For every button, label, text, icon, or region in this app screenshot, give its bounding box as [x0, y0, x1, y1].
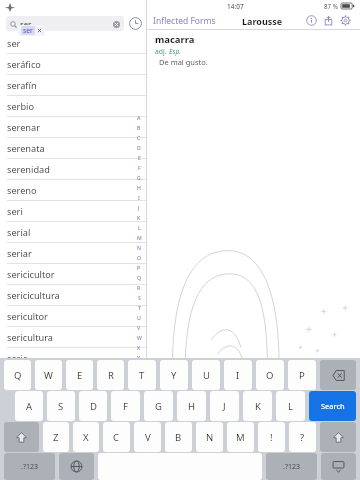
button[interactable]: !: [258, 422, 285, 452]
staticText: .?123: [21, 462, 38, 472]
button[interactable]: D: [135, 142, 143, 152]
button[interactable]: N: [196, 422, 223, 452]
button[interactable]: L: [135, 222, 143, 232]
staticText: D: [90, 400, 97, 413]
button[interactable]: Z: [43, 422, 69, 452]
button[interactable]: N: [135, 242, 143, 252]
button[interactable]: Hide keyboard: [321, 453, 356, 480]
button[interactable]: M: [227, 422, 254, 452]
button[interactable]: S: [47, 391, 75, 421]
button[interactable]: serenidad: [0, 159, 146, 180]
button[interactable]: V: [135, 322, 143, 332]
button[interactable]: Shift: [320, 422, 356, 452]
button[interactable]: ser: [18, 25, 45, 36]
button[interactable]: P: [288, 360, 316, 390]
button[interactable]: Recents: [124, 12, 146, 34]
staticText: A: [26, 400, 33, 413]
button[interactable]: M: [135, 232, 143, 242]
staticText: ser: [23, 26, 33, 35]
staticText: U: [137, 314, 141, 321]
staticText: K: [255, 400, 261, 413]
button[interactable]: K: [243, 391, 272, 421]
button[interactable]: Settings: [337, 12, 354, 29]
button[interactable]: W: [35, 360, 62, 390]
button[interactable]: Backspace: [320, 360, 356, 390]
button[interactable]: O: [135, 252, 143, 262]
button[interactable]: serafín: [0, 75, 146, 96]
button[interactable]: Y: [135, 352, 143, 362]
button[interactable]: T: [128, 360, 156, 390]
staticText: Search: [321, 401, 345, 411]
button[interactable]: G: [144, 391, 173, 421]
button[interactable]: sericultura: [0, 327, 146, 348]
button[interactable]: ser: [0, 33, 146, 54]
button[interactable]: C: [135, 132, 143, 142]
button[interactable]: Inflected Forms: [147, 15, 222, 27]
button[interactable]: sericultor: [0, 306, 146, 327]
button[interactable]: B: [135, 122, 143, 132]
button[interactable]: serial: [0, 222, 146, 243]
button[interactable]: J: [210, 391, 239, 421]
button[interactable]: H: [177, 391, 206, 421]
button[interactable]: .?123: [266, 453, 317, 480]
button[interactable]: H: [135, 182, 143, 192]
button[interactable]: serenar: [0, 117, 146, 138]
button[interactable]: D: [79, 391, 107, 421]
button[interactable]: X: [135, 342, 143, 352]
button[interactable]: K: [135, 212, 143, 222]
button[interactable]: sereno: [0, 180, 146, 201]
button[interactable]: B: [165, 422, 192, 452]
button[interactable]: F: [135, 162, 143, 172]
button[interactable]: seráfico: [0, 54, 146, 75]
button[interactable]: ser: [6, 16, 124, 31]
button[interactable]: serbio: [0, 96, 146, 117]
button[interactable]: C: [103, 422, 130, 452]
button[interactable]: W: [135, 332, 143, 342]
button[interactable]: Q: [135, 272, 143, 282]
button[interactable]: Shift: [4, 422, 39, 452]
button[interactable]: U: [135, 312, 143, 322]
button[interactable]: V: [134, 422, 161, 452]
staticText: M: [137, 234, 142, 241]
button[interactable]: E: [135, 152, 143, 162]
button[interactable]: J: [135, 202, 143, 212]
button[interactable]: F: [111, 391, 140, 421]
button[interactable]: S: [135, 292, 143, 302]
button[interactable]: U: [192, 360, 220, 390]
button[interactable]: R: [97, 360, 124, 390]
button[interactable]: sericicultor: [0, 264, 146, 285]
button[interactable]: A: [15, 391, 43, 421]
button[interactable]: Q: [4, 360, 31, 390]
button[interactable]: Share: [320, 12, 337, 29]
button[interactable]: P: [135, 262, 143, 272]
button[interactable]: Language: [59, 453, 94, 480]
button[interactable]: seri: [0, 201, 146, 222]
staticText: U: [203, 369, 210, 382]
staticText: serbio: [7, 100, 34, 113]
button[interactable]: serenata: [0, 138, 146, 159]
staticText: P: [299, 369, 305, 382]
staticText: L: [138, 224, 141, 231]
button[interactable]: G: [135, 172, 143, 182]
button[interactable]: L: [276, 391, 305, 421]
button[interactable]: ?: [289, 422, 316, 452]
button[interactable]: Search: [309, 391, 356, 421]
button[interactable]: serie: [0, 348, 146, 369]
button[interactable]: seriar: [0, 243, 146, 264]
button[interactable]: R: [135, 282, 143, 292]
button[interactable]: Info: [303, 12, 320, 29]
button[interactable]: O: [256, 360, 284, 390]
button[interactable]: sericicultura: [0, 285, 146, 306]
button[interactable]: I: [135, 192, 143, 202]
staticText: V: [145, 431, 151, 444]
staticText: I: [236, 369, 240, 382]
button[interactable]: T: [135, 302, 143, 312]
button[interactable]: .?123: [4, 453, 55, 480]
button[interactable]: Y: [160, 360, 188, 390]
button[interactable]: I: [224, 360, 252, 390]
button[interactable]: A: [135, 112, 143, 122]
button[interactable]: E: [66, 360, 93, 390]
button[interactable]: X: [73, 422, 99, 452]
